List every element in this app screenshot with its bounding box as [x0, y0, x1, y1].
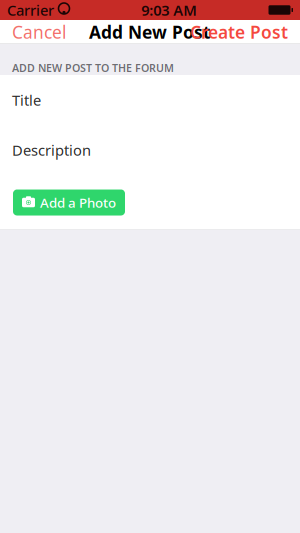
staticText: Description: [12, 140, 91, 160]
staticText: Carrier: [7, 0, 54, 20]
staticText: Add a Photo: [40, 194, 116, 211]
staticText: Create Post: [190, 20, 288, 43]
staticText: Add New Post: [89, 20, 211, 43]
staticText: Cancel: [12, 20, 66, 43]
button[interactable]: Create Post: [181, 14, 297, 49]
button[interactable]: Add a Photo: [13, 189, 125, 215]
staticText: 9:03 AM: [141, 0, 197, 20]
staticText: ADD NEW POST TO THE FORUM: [12, 61, 174, 75]
staticText: Title: [12, 90, 41, 110]
button[interactable]: Cancel: [3, 14, 75, 49]
